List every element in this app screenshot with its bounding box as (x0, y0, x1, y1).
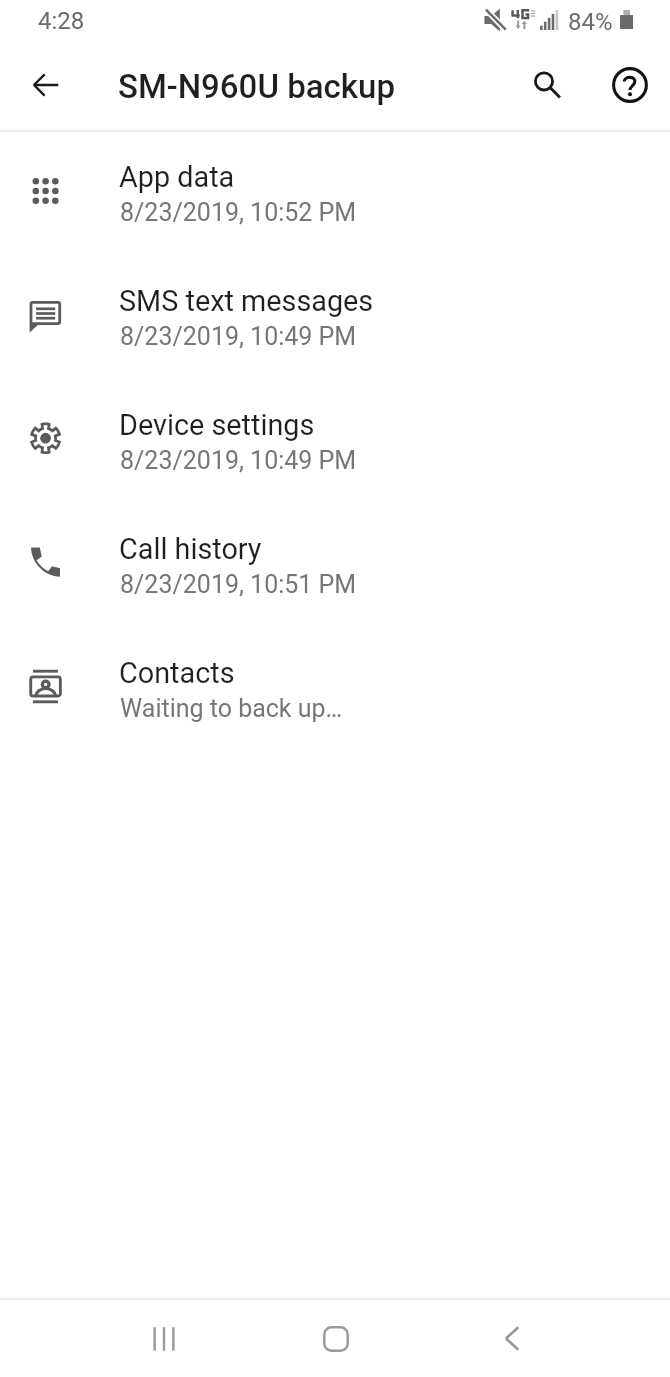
button[interactable]: Contacts (0, 636, 670, 760)
staticText: 4:28 (38, 7, 85, 35)
staticText: 8/23/2019, 10:51 PM (120, 570, 357, 599)
button[interactable]: Home (304, 1300, 367, 1377)
staticText: 8/23/2019, 10:49 PM (120, 322, 357, 351)
button[interactable]: Call history (0, 512, 670, 636)
button[interactable]: Navigate up (20, 59, 72, 111)
staticText: Device settings (119, 408, 315, 442)
staticText: App data (119, 160, 235, 194)
button[interactable]: Search (521, 59, 573, 111)
button[interactable]: SMS text messages (0, 264, 670, 388)
button[interactable]: Back (480, 1300, 543, 1377)
staticText: Waiting to back up… (120, 694, 343, 723)
staticText: 84% (568, 8, 613, 36)
button[interactable]: Device settings (0, 388, 670, 512)
staticText: Contacts (119, 656, 235, 690)
button[interactable]: Help (604, 59, 656, 111)
staticText: 8/23/2019, 10:49 PM (120, 446, 357, 475)
staticText: 8/23/2019, 10:52 PM (120, 198, 357, 227)
staticText: Call history (119, 532, 262, 566)
staticText: SMS text messages (119, 284, 374, 318)
button[interactable]: Recent apps (132, 1300, 195, 1377)
staticText: SM-N960U backup (118, 67, 396, 106)
button[interactable]: App data (0, 140, 670, 264)
